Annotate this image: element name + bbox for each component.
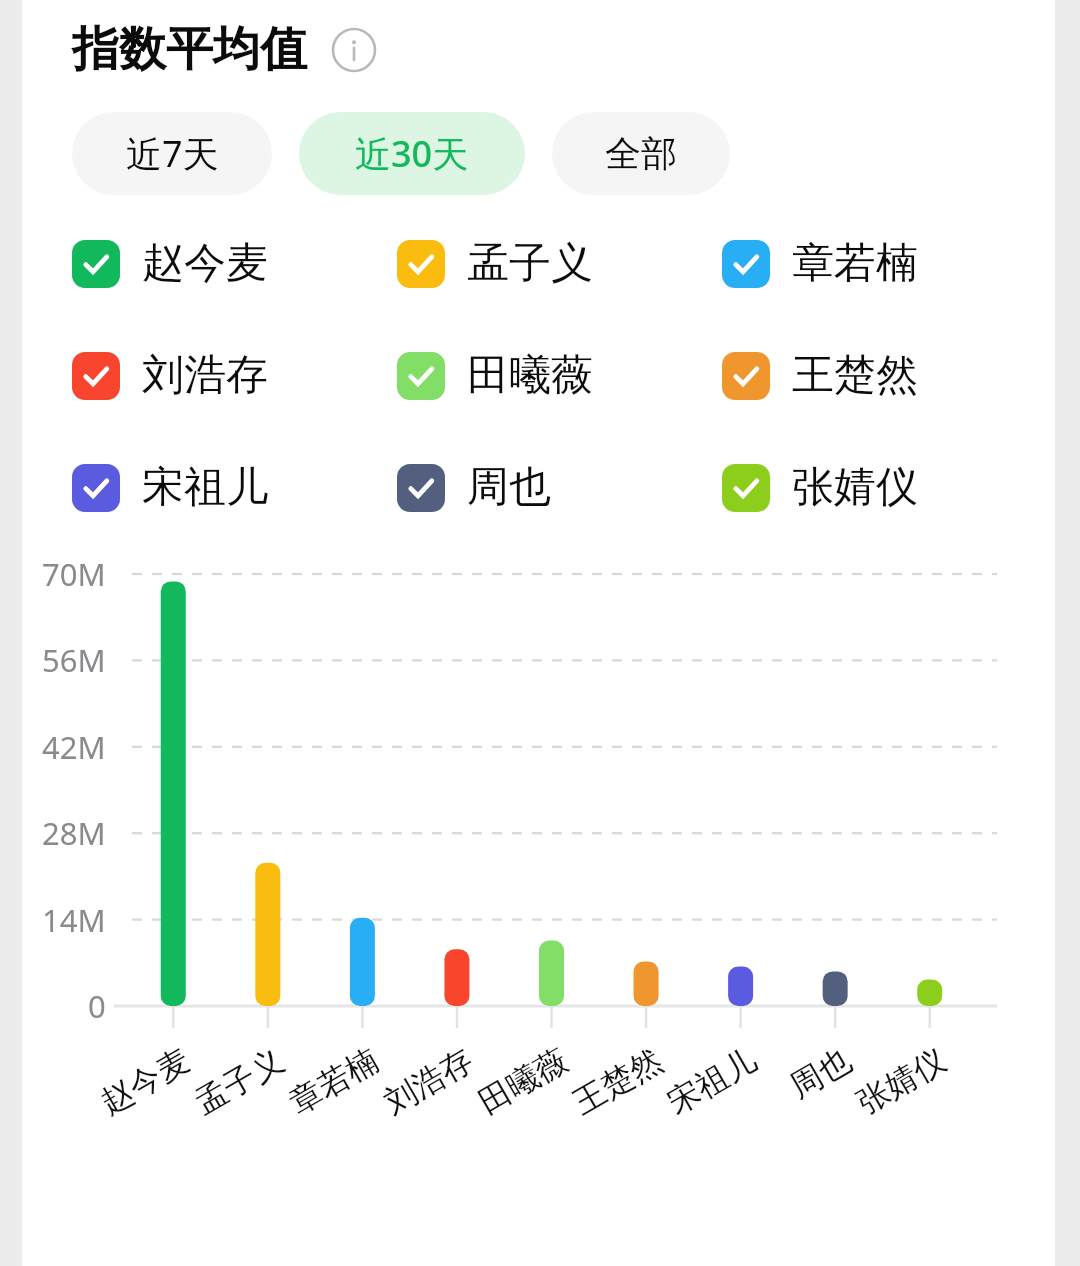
staticText: 赵今麦 — [142, 237, 268, 290]
button[interactable]: 张婧仪 — [722, 461, 1047, 514]
staticText: 刘浩存 — [142, 349, 268, 402]
button[interactable]: 刘浩存 — [72, 349, 397, 402]
button[interactable]: 章若楠 — [722, 237, 1047, 290]
button[interactable]: Info — [331, 27, 377, 73]
button[interactable]: 近30天 — [299, 112, 525, 195]
button[interactable]: 宋祖儿 — [72, 461, 397, 514]
staticText: 指数平均值 — [72, 20, 307, 79]
staticText: 章若楠 — [792, 237, 918, 290]
staticText: 近7天 — [126, 129, 219, 178]
button[interactable]: 赵今麦 — [72, 237, 397, 290]
staticText: 宋祖儿 — [142, 461, 268, 514]
staticText: 田曦薇 — [467, 349, 593, 402]
button[interactable]: 孟子义 — [397, 237, 722, 290]
button[interactable]: 周也 — [397, 461, 722, 514]
staticText: 张婧仪 — [792, 461, 918, 514]
staticText: 全部 — [605, 131, 677, 176]
button[interactable]: 田曦薇 — [397, 349, 722, 402]
staticText: 周也 — [467, 461, 551, 514]
staticText: 近30天 — [355, 129, 469, 178]
button[interactable]: 王楚然 — [722, 349, 1047, 402]
staticText: 孟子义 — [467, 237, 593, 290]
staticText: 王楚然 — [792, 349, 918, 402]
button[interactable]: 全部 — [552, 112, 730, 195]
button[interactable]: 近7天 — [72, 112, 272, 195]
